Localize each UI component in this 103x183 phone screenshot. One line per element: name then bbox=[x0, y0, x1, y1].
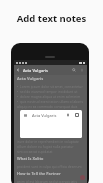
other: Save bbox=[75, 113, 79, 117]
button[interactable]: Back bbox=[16, 65, 84, 75]
other: Search bbox=[72, 68, 76, 72]
other: Format bbox=[66, 113, 70, 117]
button[interactable]: Add note bbox=[80, 175, 85, 180]
staticText: proident sunt in culpa qui officia deser… bbox=[17, 164, 85, 168]
staticText: sint occaecat cupidatat bbox=[17, 149, 53, 153]
other: Back bbox=[16, 68, 20, 72]
other: More options bbox=[80, 68, 84, 72]
staticText: • Lorem ipsum dolor sit amet, consectetu… bbox=[17, 84, 85, 88]
staticText: How to Tell the Partner bbox=[17, 171, 61, 176]
staticText: • sed do eiusmod tempor incididunt ut la… bbox=[17, 89, 85, 93]
staticText: • dolore magna aliqua ut enim ad minim v… bbox=[17, 94, 85, 98]
staticText: aliquip ex ea commodo consequat duis aut… bbox=[17, 104, 85, 108]
staticText: Acta Vulgaris bbox=[32, 113, 57, 118]
staticText: Acta Vulgaris bbox=[23, 68, 48, 73]
staticText: • quis nostrud exercitation ullamco labo… bbox=[17, 99, 85, 103]
staticText: irure dolor in reprehenderit in voluptat… bbox=[17, 139, 85, 143]
staticText: What Is Xxlito bbox=[17, 156, 44, 161]
staticText: Add text notes bbox=[0, 12, 103, 25]
staticText: Acta Vulgaris bbox=[17, 76, 44, 81]
staticText: anim id est laborum sed ut perspiciatis … bbox=[17, 179, 85, 183]
other: Reorder bbox=[24, 114, 27, 117]
button[interactable]: Reorder bbox=[20, 110, 82, 138]
staticText: cillum dolore eu fugiat nulla pariatur e… bbox=[17, 144, 85, 148]
